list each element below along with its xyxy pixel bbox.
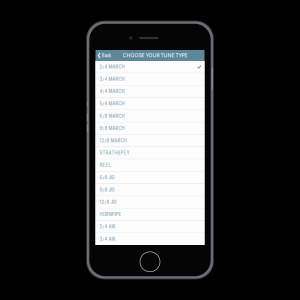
staticText: 12/8 JIG [99,200,116,205]
staticText: 12/8 MARCH [99,138,126,143]
staticText: Back [102,53,111,58]
button[interactable]: 9/8 JIG [95,184,204,196]
button[interactable]: 12/8 MARCH [95,135,204,147]
button[interactable]: 2/4 MARCH [95,61,204,73]
button[interactable]: 5/4 MARCH [95,98,204,110]
staticText: 5/4 MARCH [99,101,124,106]
staticText: 6/8 MARCH [99,113,124,119]
staticText: STRATHSPEY [99,150,129,156]
button[interactable]: STRATHSPEY [95,147,204,159]
button[interactable]: Home [140,252,160,272]
button[interactable]: 6/8 MARCH [95,110,204,122]
staticText: 3/4 MARCH [99,77,124,82]
staticText: 9/8 MARCH [99,126,124,131]
button[interactable]: Back [95,50,111,61]
button[interactable]: 2/4 AIR [95,221,204,233]
button[interactable]: 12/8 JIG [95,196,204,209]
button[interactable]: 6/8 JIG [95,172,204,184]
staticText: 2/4 AIR [99,224,115,229]
staticText: CHOOSE YOUR TUNE TYPE [122,52,187,58]
button[interactable]: 3/4 AIR [95,233,204,245]
staticText: 3/4 AIR [99,236,115,242]
button[interactable]: 4/4 MARCH [95,86,204,98]
staticText: 2/4 MARCH [99,64,124,69]
staticText: HORNPIPE [99,212,121,217]
button[interactable]: 9/8 MARCH [95,122,204,135]
staticText: 9/8 JIG [99,187,114,192]
button[interactable]: HORNPIPE [95,209,204,221]
staticText: 4/4 MARCH [99,89,124,94]
button[interactable]: 3/4 MARCH [95,73,204,86]
staticText: 6/8 JIG [99,175,114,180]
staticText: REEL [99,163,110,168]
button[interactable]: REEL [95,159,204,172]
